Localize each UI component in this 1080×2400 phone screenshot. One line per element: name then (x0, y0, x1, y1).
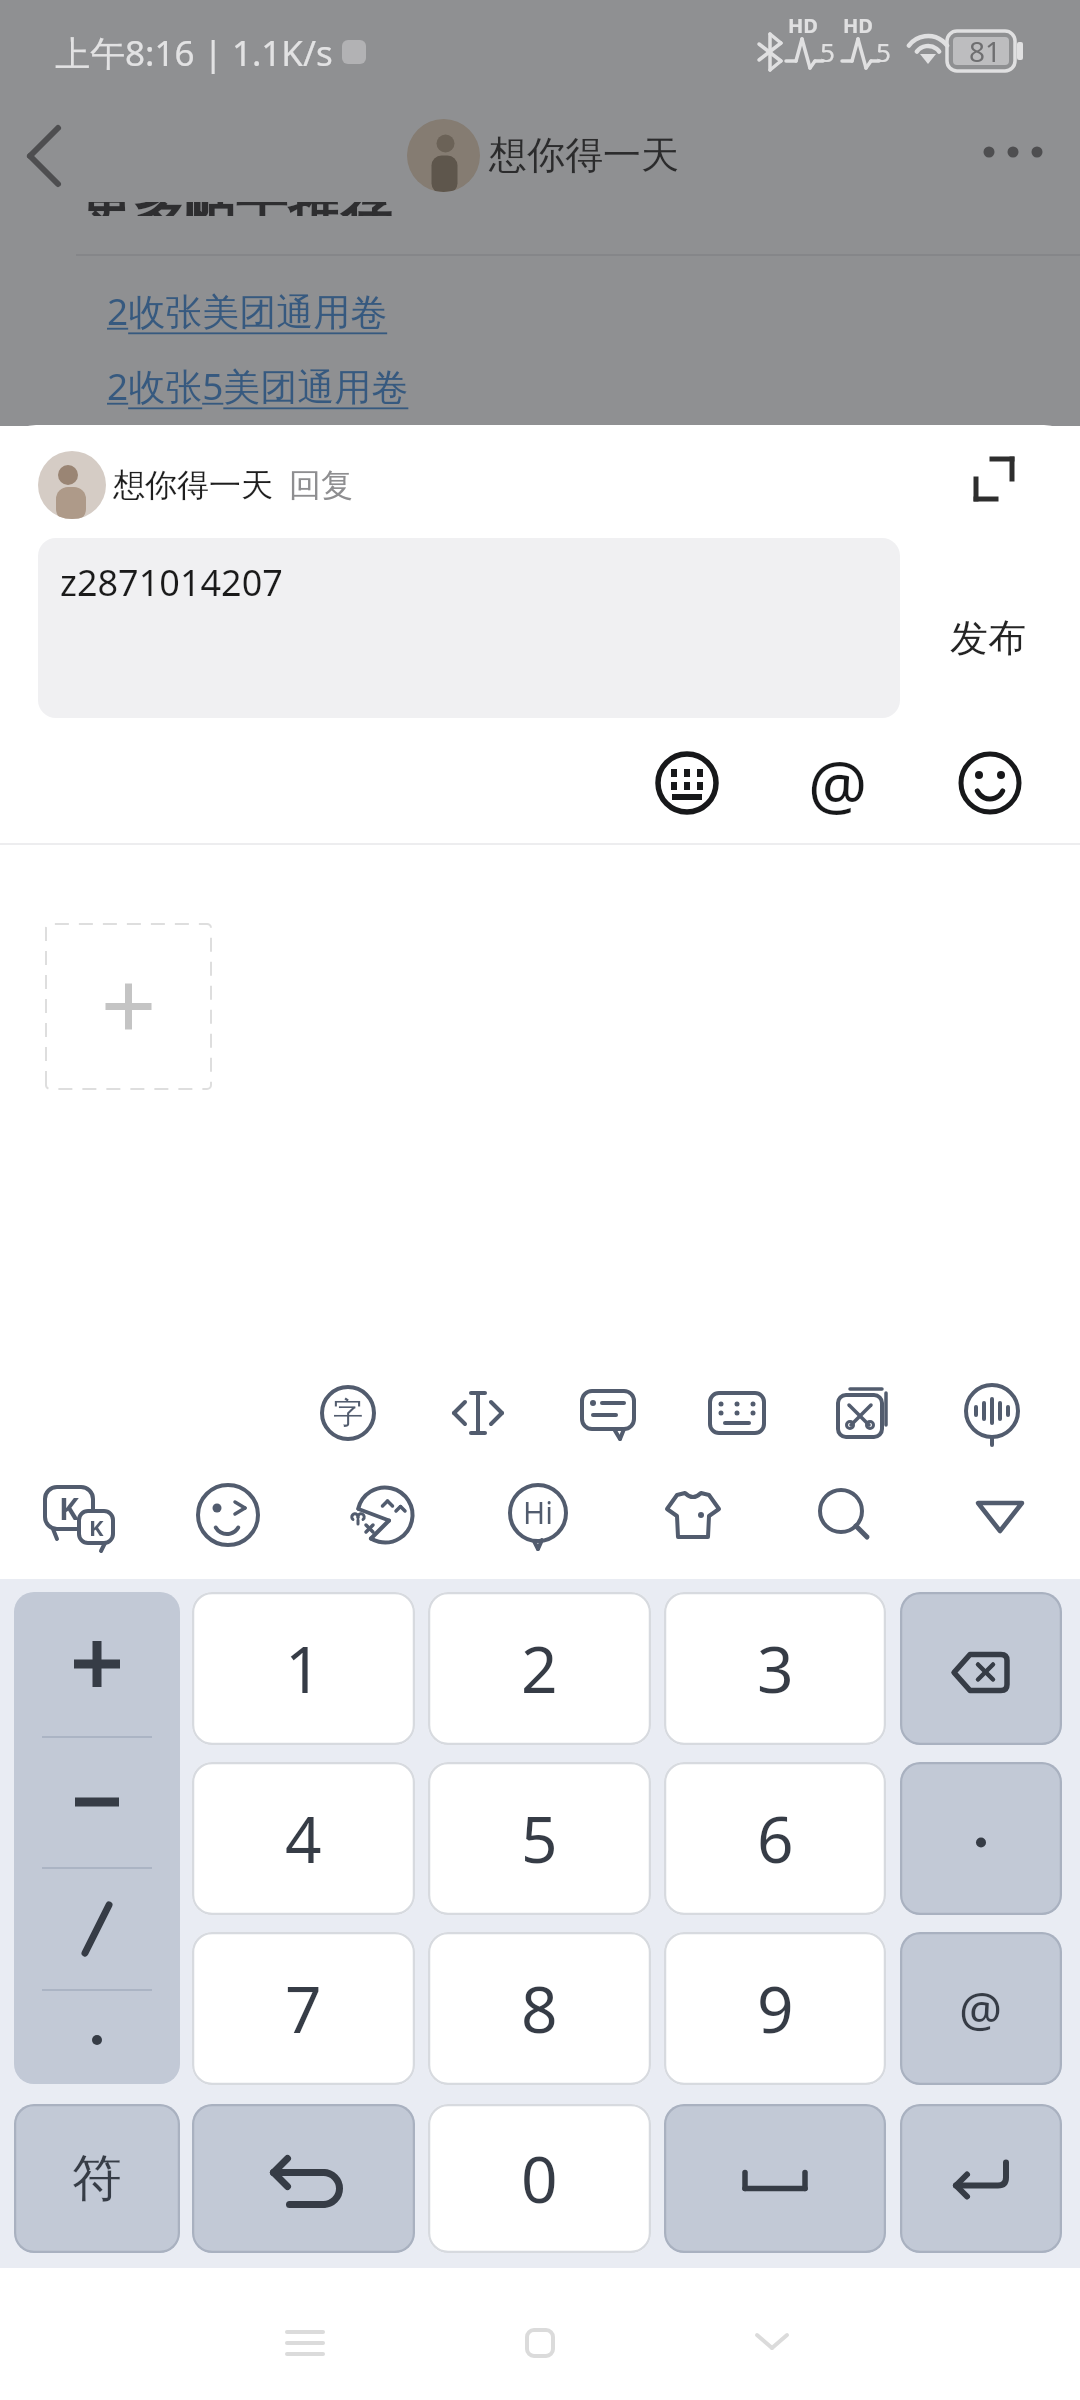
button[interactable] (192, 2104, 415, 2253)
button[interactable] (964, 1479, 1036, 1551)
button[interactable] (964, 449, 1024, 509)
button[interactable] (652, 748, 722, 818)
button[interactable] (518, 2321, 562, 2365)
button[interactable] (703, 1379, 771, 1447)
staticText: 2 (521, 1625, 558, 1712)
button[interactable]: 8 (428, 1932, 651, 2085)
button[interactable] (343, 1475, 423, 1555)
button[interactable] (45, 923, 212, 1090)
button[interactable]: 2 (428, 1592, 651, 1745)
button[interactable]: 6 (664, 1762, 886, 1915)
button[interactable] (747, 2323, 797, 2359)
button[interactable] (809, 1479, 881, 1551)
button[interactable]: @ (900, 1932, 1062, 2085)
staticText: 8 (521, 1965, 558, 2052)
staticText: @ (959, 1976, 1003, 2041)
staticText: 更多帖子推荐 (80, 202, 392, 216)
button[interactable]: 4 (192, 1762, 415, 1915)
button[interactable] (22, 124, 66, 188)
staticText: 81 (969, 32, 1002, 70)
button[interactable]: 7 (192, 1932, 415, 2085)
staticText: K (89, 1512, 104, 1542)
button[interactable] (793, 738, 883, 828)
button[interactable]: 3 (664, 1592, 886, 1745)
button[interactable] (828, 1379, 896, 1447)
button[interactable] (41, 1479, 113, 1551)
button[interactable] (407, 119, 480, 192)
button[interactable]: 2收张5美团通用卷 (107, 360, 409, 411)
staticText: 符 (72, 2147, 122, 2210)
staticText: 0 (521, 2135, 558, 2222)
button[interactable] (655, 1477, 731, 1553)
button[interactable] (975, 132, 1051, 172)
button[interactable]: 0 (428, 2104, 651, 2253)
staticText: 7 (285, 1965, 322, 2052)
staticText: 5 (876, 34, 891, 69)
staticText: 上午8:16 | 1.1K/s (55, 29, 333, 77)
button[interactable]: 2收张美团通用卷 (107, 285, 388, 336)
staticText: HD (788, 12, 818, 39)
staticText: 5 (521, 1795, 558, 1882)
button[interactable]: 符 (14, 2104, 180, 2253)
button[interactable] (958, 1379, 1026, 1447)
button[interactable]: 9 (664, 1932, 886, 2085)
staticText: 4 (285, 1795, 322, 1882)
button[interactable] (316, 1381, 380, 1445)
staticText: 6 (757, 1795, 794, 1882)
staticText: @ (808, 738, 868, 828)
staticText: 5 (820, 34, 835, 69)
button[interactable] (38, 538, 900, 718)
button[interactable] (900, 1762, 1062, 1915)
button[interactable] (446, 1381, 510, 1445)
staticText: 想你得一天 (113, 465, 273, 505)
button[interactable] (14, 1592, 180, 2084)
button[interactable] (955, 748, 1025, 818)
staticText: 1 (285, 1625, 322, 1712)
button[interactable]: 想你得一天 (489, 131, 679, 179)
button[interactable] (664, 2104, 886, 2253)
button[interactable] (38, 451, 106, 519)
staticText: 回复 (289, 465, 353, 505)
button[interactable]: 1 (192, 1592, 415, 1745)
staticText: K (59, 1488, 79, 1528)
staticText: 发布 (950, 614, 1026, 662)
staticText: 3 (757, 1625, 794, 1712)
staticText: Hi (523, 1492, 553, 1533)
button[interactable] (275, 2321, 335, 2365)
button[interactable]: 5 (428, 1762, 651, 1915)
button[interactable] (928, 608, 1048, 668)
staticText: z2871014207 (60, 558, 283, 607)
staticText: HD (843, 12, 873, 39)
button[interactable] (900, 2104, 1062, 2253)
button[interactable] (192, 1479, 264, 1551)
button[interactable] (900, 1592, 1062, 1745)
button[interactable] (502, 1479, 574, 1551)
button[interactable] (574, 1379, 642, 1447)
staticText: 字 (333, 1394, 363, 1432)
staticText: 9 (757, 1965, 794, 2052)
